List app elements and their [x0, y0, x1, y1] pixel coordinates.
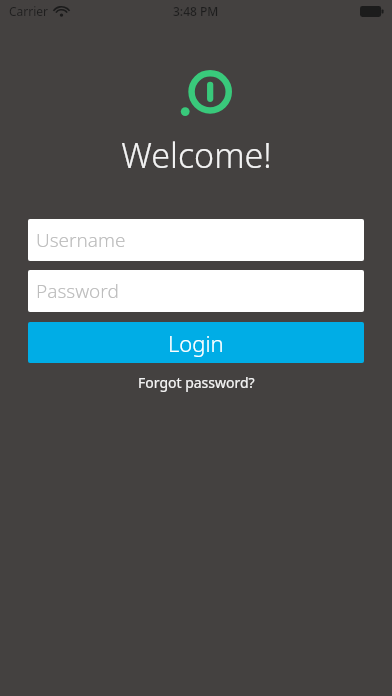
button[interactable]: Password — [28, 270, 364, 312]
button[interactable]: Login — [28, 322, 364, 363]
staticText: Welcome! — [121, 132, 272, 178]
other: App logo — [180, 70, 232, 122]
button[interactable]: Username — [28, 219, 364, 261]
staticText: Carrier — [9, 3, 49, 19]
staticText: 3:48 PM — [173, 3, 219, 19]
staticText: Login — [168, 328, 224, 358]
other: Battery full — [360, 6, 384, 17]
other: Wi-Fi signal — [55, 6, 68, 16]
staticText: Forgot password? — [138, 373, 255, 392]
staticText: Username — [36, 227, 126, 253]
button[interactable]: Forgot password? — [128, 371, 265, 394]
staticText: Password — [36, 278, 119, 304]
